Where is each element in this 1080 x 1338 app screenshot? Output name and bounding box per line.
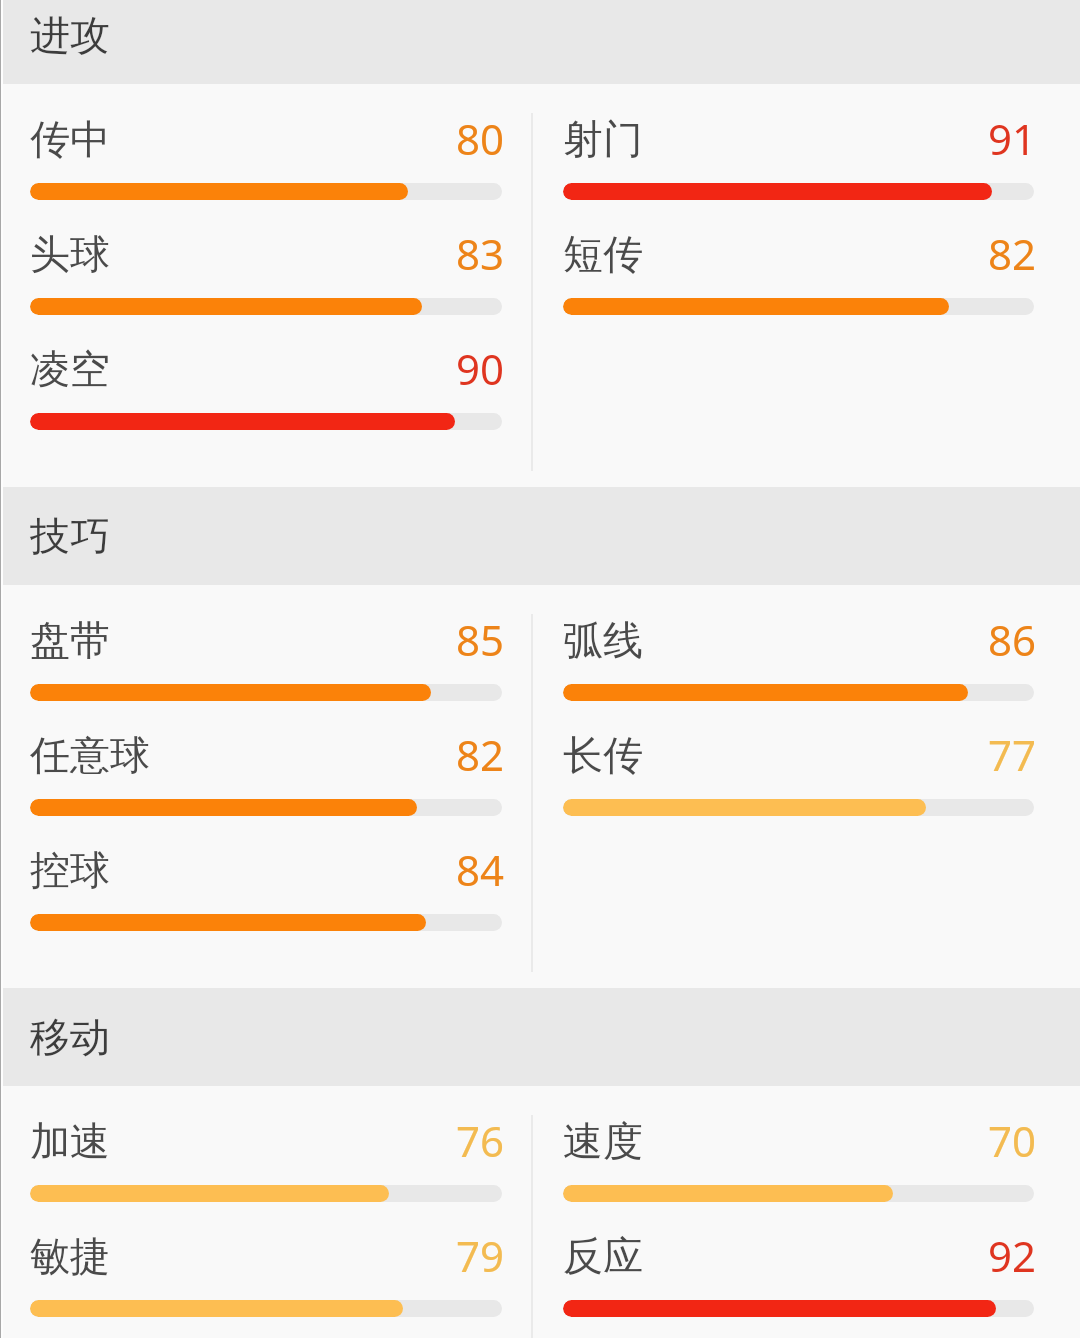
staticText: 92 bbox=[987, 1227, 1036, 1284]
staticText: 77 bbox=[987, 726, 1036, 783]
staticText: 91 bbox=[987, 110, 1036, 167]
button[interactable]: 移动 bbox=[0, 988, 1080, 1086]
staticText: 76 bbox=[455, 1112, 504, 1169]
staticText: 84 bbox=[455, 841, 504, 898]
button[interactable]: 任意球 82 bbox=[30, 700, 502, 815]
button[interactable]: 盘带 85 bbox=[30, 585, 502, 700]
staticText: 头球 bbox=[30, 229, 110, 279]
staticText: 盘带 bbox=[30, 615, 110, 665]
staticText: 反应 bbox=[563, 1231, 643, 1281]
staticText: 移动 bbox=[30, 1012, 110, 1062]
staticText: 传中 bbox=[30, 114, 110, 164]
staticText: 80 bbox=[455, 110, 504, 167]
staticText: 控球 bbox=[30, 845, 110, 895]
button[interactable]: 加速 76 bbox=[30, 1086, 502, 1201]
staticText: 敏捷 bbox=[30, 1231, 110, 1281]
staticText: 82 bbox=[455, 726, 504, 783]
staticText: 79 bbox=[455, 1227, 504, 1284]
staticText: 任意球 bbox=[30, 730, 150, 780]
staticText: 82 bbox=[987, 225, 1036, 282]
button[interactable]: 进攻 bbox=[0, 0, 1080, 84]
staticText: 86 bbox=[987, 611, 1036, 668]
button[interactable]: 速度 70 bbox=[563, 1086, 1034, 1201]
button[interactable]: 长传 77 bbox=[563, 700, 1034, 815]
staticText: 83 bbox=[455, 225, 504, 282]
button[interactable]: 头球 83 bbox=[30, 199, 502, 314]
staticText: 速度 bbox=[563, 1116, 643, 1166]
button[interactable]: 反应 92 bbox=[563, 1201, 1034, 1316]
staticText: 短传 bbox=[563, 229, 643, 279]
staticText: 进攻 bbox=[30, 10, 110, 60]
staticText: 凌空 bbox=[30, 344, 110, 394]
button[interactable]: 技巧 bbox=[0, 487, 1080, 585]
button[interactable]: 传中 80 bbox=[30, 84, 502, 199]
staticText: 射门 bbox=[563, 114, 643, 164]
button[interactable]: 凌空 90 bbox=[30, 314, 502, 429]
staticText: 85 bbox=[455, 611, 504, 668]
button[interactable]: 射门 91 bbox=[563, 84, 1034, 199]
staticText: 弧线 bbox=[563, 615, 643, 665]
staticText: 加速 bbox=[30, 1116, 110, 1166]
staticText: 90 bbox=[455, 340, 504, 397]
button[interactable]: 弧线 86 bbox=[563, 585, 1034, 700]
button[interactable]: 控球 84 bbox=[30, 815, 502, 930]
button[interactable]: 敏捷 79 bbox=[30, 1201, 502, 1316]
staticText: 长传 bbox=[563, 730, 643, 780]
staticText: 技巧 bbox=[30, 511, 110, 561]
staticText: 70 bbox=[987, 1112, 1036, 1169]
button[interactable]: 短传 82 bbox=[563, 199, 1034, 314]
